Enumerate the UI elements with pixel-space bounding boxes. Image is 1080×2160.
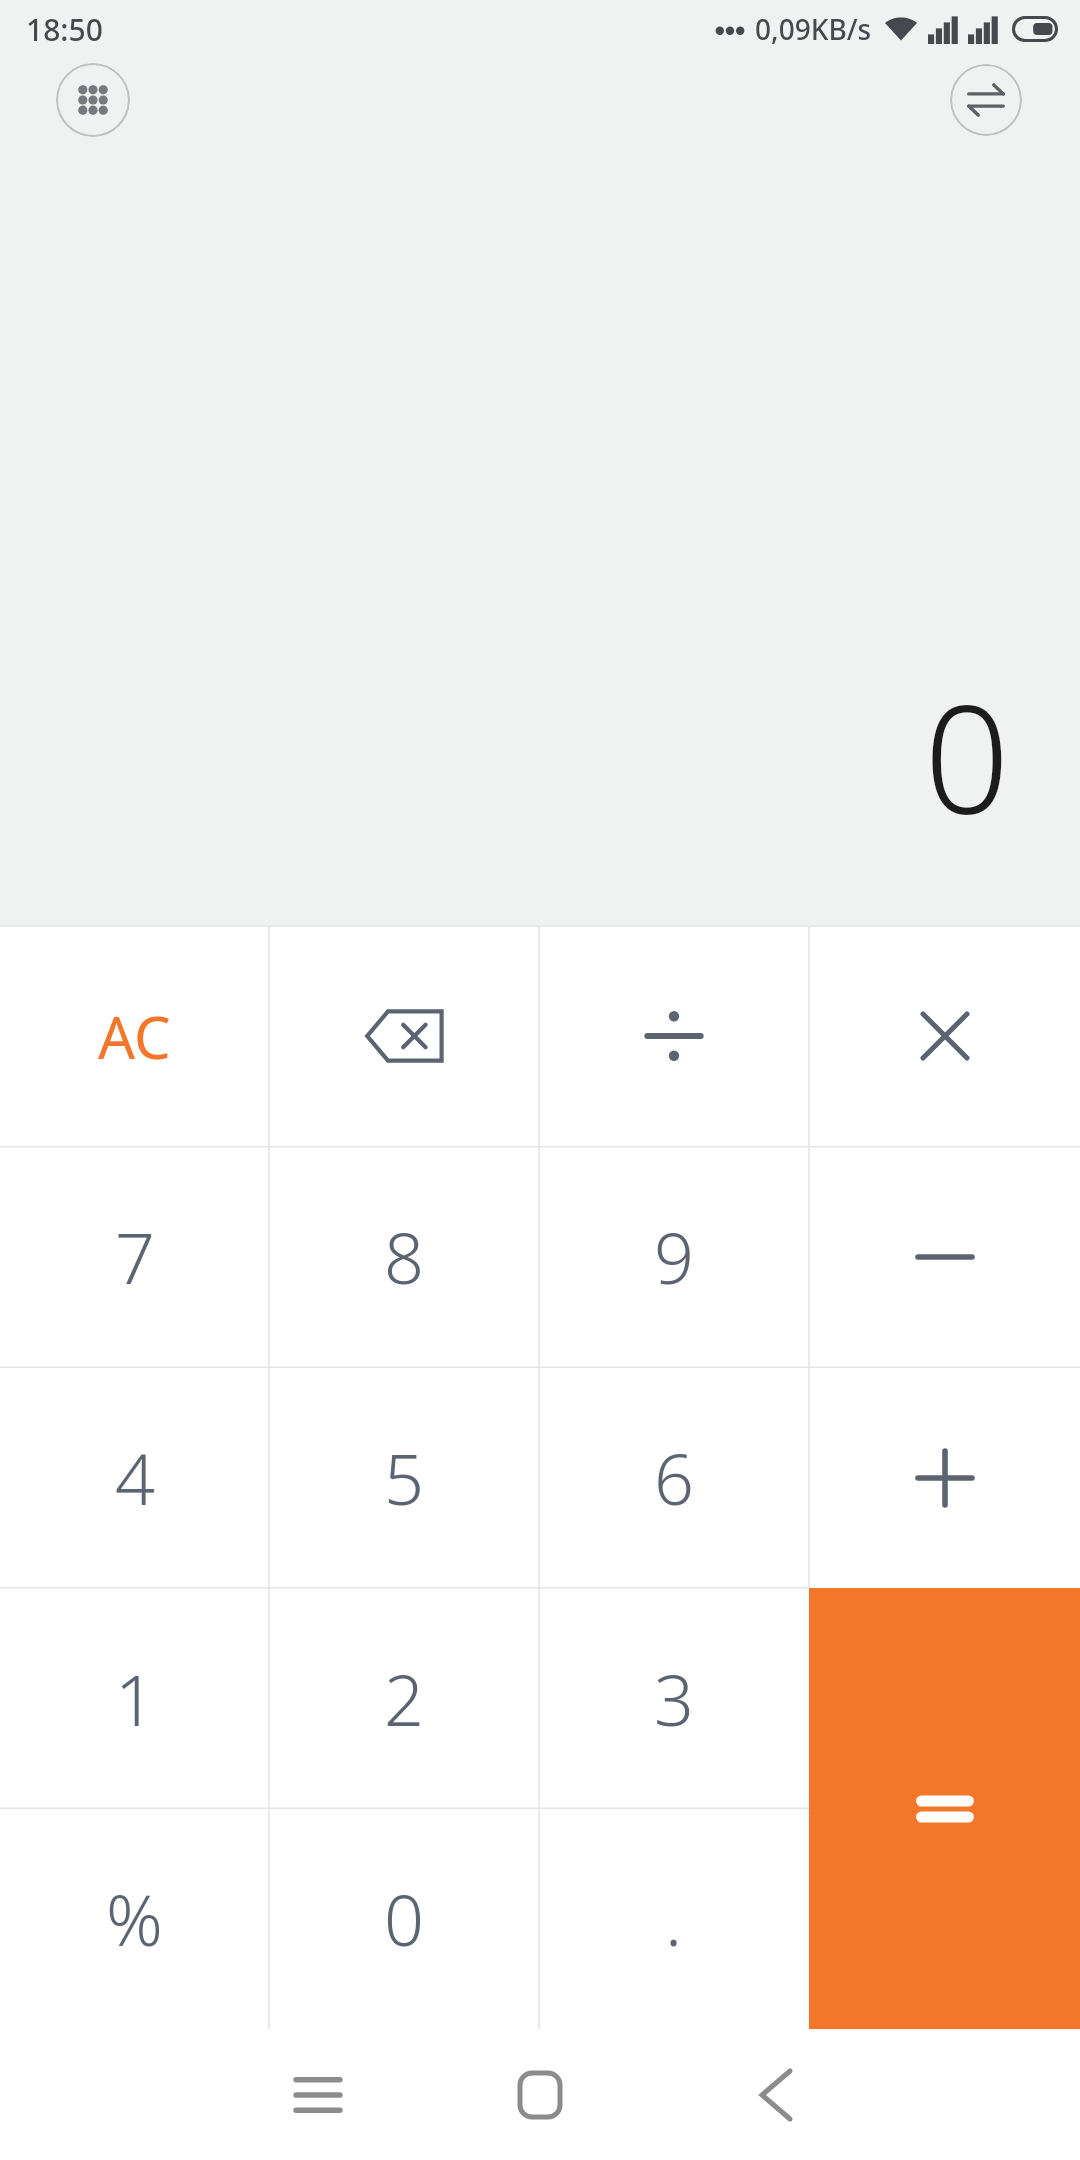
button[interactable]: AC: [0, 926, 269, 1146]
button[interactable]: .: [539, 1808, 809, 2029]
button[interactable]: 9: [539, 1146, 809, 1367]
staticText: 5: [384, 1430, 424, 1525]
button[interactable]: Home: [480, 2035, 600, 2155]
button[interactable]: 3: [539, 1588, 809, 1808]
button[interactable]: 6: [539, 1367, 809, 1588]
staticText: 0: [384, 1871, 424, 1966]
button[interactable]: Divide: [539, 926, 809, 1146]
button[interactable]: Equals: [809, 1588, 1080, 2029]
button[interactable]: 7: [0, 1146, 269, 1367]
staticText: 9: [654, 1209, 694, 1304]
staticText: 6: [654, 1430, 694, 1525]
staticText: .: [665, 1871, 683, 1966]
button[interactable]: 0: [269, 1808, 539, 2029]
button[interactable]: 2: [269, 1588, 539, 1808]
button[interactable]: 1: [0, 1588, 269, 1808]
button[interactable]: %: [0, 1808, 269, 2029]
staticText: 4: [115, 1430, 155, 1525]
button[interactable]: Menu: [258, 2035, 378, 2155]
staticText: %: [106, 1871, 163, 1966]
staticText: 7: [115, 1209, 155, 1304]
button[interactable]: 8: [269, 1146, 539, 1367]
staticText: 8: [384, 1209, 424, 1304]
button[interactable]: 4: [0, 1367, 269, 1588]
staticText: AC: [98, 997, 171, 1076]
staticText: 18:50: [26, 9, 103, 50]
button[interactable]: Back: [716, 2035, 836, 2155]
button[interactable]: Plus: [809, 1367, 1080, 1588]
staticText: 2: [384, 1651, 424, 1746]
staticText: 3: [654, 1651, 694, 1746]
button[interactable]: Unit converter: [950, 64, 1022, 136]
button[interactable]: 5: [269, 1367, 539, 1588]
button[interactable]: Scientific keypad: [56, 63, 130, 137]
staticText: 1: [115, 1651, 155, 1746]
button[interactable]: Backspace: [269, 926, 539, 1146]
button[interactable]: Minus: [809, 1146, 1080, 1367]
staticText: 0: [924, 654, 1010, 858]
button[interactable]: Multiply: [809, 926, 1080, 1146]
staticText: 0,09KB/s: [755, 10, 872, 48]
